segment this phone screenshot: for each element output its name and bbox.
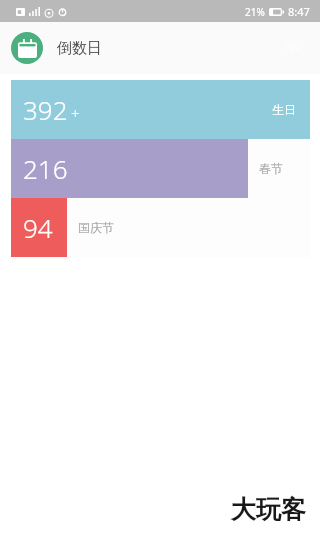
staticText: 216 (23, 151, 68, 186)
staticText: 392 (23, 92, 68, 127)
staticText: 生日 (272, 102, 296, 117)
staticText: 8:47 (288, 4, 310, 19)
staticText: 国庆节 (78, 220, 114, 235)
button[interactable]: 392 (11, 80, 310, 139)
staticText: + (71, 103, 80, 123)
button[interactable]: 94 (11, 198, 310, 257)
button[interactable]: Countdown app icon (11, 32, 43, 64)
button[interactable]: 216 (11, 139, 310, 198)
staticText: 21% (245, 5, 265, 19)
staticText: 94 (23, 210, 53, 245)
staticText: 倒数日 (57, 39, 102, 58)
staticText: 春节 (259, 161, 283, 176)
staticText: 大玩客 (231, 494, 306, 525)
